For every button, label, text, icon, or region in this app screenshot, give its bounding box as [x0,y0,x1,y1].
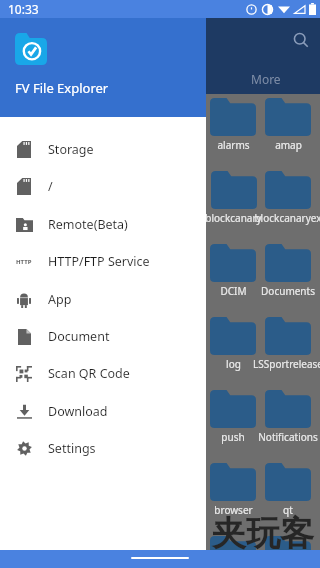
staticText: alarms [217,138,250,152]
button[interactable]: Notifications [248,390,320,460]
staticText: log [226,357,241,371]
button[interactable]: LSSportrelease [248,317,320,387]
staticText: 夹玩客 [212,512,314,555]
button[interactable]: Search [288,27,314,53]
button[interactable]: Scan QR Code [0,355,206,392]
button[interactable]: App [0,281,206,318]
button[interactable]: Settings [0,430,206,467]
button[interactable] [193,536,273,568]
staticText: qt [283,503,293,517]
button[interactable]: browser [193,463,273,533]
button[interactable] [248,536,320,568]
button[interactable]: Download [0,393,206,430]
staticText: HTTP [16,258,32,266]
button[interactable]: log [193,317,273,387]
staticText: 10:33 [8,1,39,17]
staticText: App [48,291,72,308]
staticText: blockcanary [205,211,262,225]
staticText: DCIM [220,284,247,298]
button[interactable]: Documents [248,244,320,314]
staticText: Scan QR Code [48,365,130,382]
staticText: / [48,178,53,195]
staticText: Storage [48,141,94,158]
button[interactable]: DCIM [193,244,273,314]
staticText: HTTP/FTP Service [48,253,150,270]
staticText: Remote(Beta) [48,216,128,233]
button[interactable]: / [0,168,206,205]
button[interactable]: blockcanary [193,171,273,241]
staticText: push [221,430,245,444]
button[interactable]: Storage [0,131,206,168]
button[interactable]: push [193,390,273,460]
staticText: Documents [261,284,315,298]
button[interactable]: alarms [193,98,273,168]
button[interactable]: HTTP [0,243,206,280]
staticText: FV File Explorer [15,79,109,97]
staticText: Settings [48,440,96,457]
button[interactable]: blockcanaryex [248,171,320,241]
staticText: More [251,71,281,87]
button[interactable]: More [238,68,294,90]
staticText: Download [48,403,108,420]
staticText: amap [275,138,302,152]
button[interactable]: Remote(Beta) [0,206,206,243]
button[interactable]: Document [0,318,206,355]
button[interactable]: qt [248,463,320,533]
button[interactable]: amap [248,98,320,168]
staticText: LSSportrelease [253,357,320,371]
staticText: Document [48,328,110,345]
staticText: browser [214,503,253,517]
staticText: Notifications [258,430,318,444]
staticText: blockcanaryex [254,211,320,225]
